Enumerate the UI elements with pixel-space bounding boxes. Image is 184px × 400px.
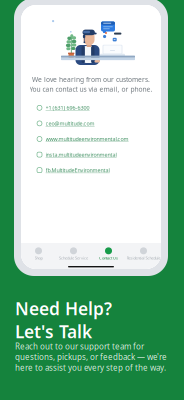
staticText: fb.MultitudeEnvironmental xyxy=(46,167,110,174)
staticText: www.multitudeenvironmental.com xyxy=(46,135,129,143)
staticText: We love hearing from our customers. xyxy=(32,75,150,84)
staticText: +1 (631) 696-6300 xyxy=(46,104,90,111)
button[interactable]: fb.MultitudeEnvironmental xyxy=(29,162,153,178)
button[interactable]: ceo@multitude.com xyxy=(29,116,153,131)
button[interactable]: Shop xyxy=(21,245,56,263)
staticText: Shop xyxy=(34,255,42,261)
button[interactable]: Contact Us xyxy=(91,245,126,263)
button[interactable]: Schedule Service xyxy=(56,245,91,263)
button[interactable]: Residential Schedule xyxy=(126,245,161,263)
staticText: insta.multitudeenvironmental xyxy=(46,151,117,158)
staticText: ceo@multitude.com xyxy=(46,120,95,127)
staticText: Let's Talk xyxy=(15,320,92,343)
staticText: Schedule Service xyxy=(59,255,88,261)
button[interactable]: www.multitudeenvironmental.com xyxy=(29,131,153,147)
staticText: Reach out to our support team for questi… xyxy=(15,341,167,373)
button[interactable]: +1 (631) 696-6300 xyxy=(29,100,153,116)
button[interactable]: insta.multitudeenvironmental xyxy=(29,147,153,162)
staticText: Need Help? xyxy=(15,297,112,320)
staticText: You can contact us via email, or phone. xyxy=(29,85,152,94)
staticText: Contact Us xyxy=(99,255,118,261)
staticText: Residential Schedule xyxy=(126,255,160,261)
